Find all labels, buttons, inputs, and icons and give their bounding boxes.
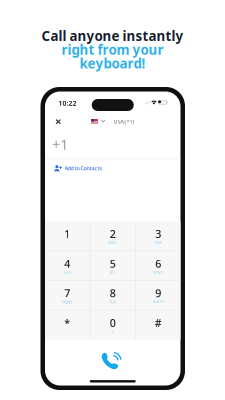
button[interactable]: USA (+1)	[88, 116, 137, 127]
button[interactable]: 8	[90, 281, 135, 310]
staticText: MNO	[153, 270, 163, 275]
staticText: 10:22	[58, 99, 76, 108]
staticText: keyboard!	[79, 54, 145, 72]
staticText: 6	[155, 256, 161, 271]
button[interactable]: 1	[45, 221, 90, 250]
staticText: ABC	[108, 240, 117, 245]
staticText: PQRS	[62, 299, 72, 305]
staticText: USA (+1)	[113, 118, 134, 125]
button[interactable]: 6	[136, 251, 180, 280]
button[interactable]: 5	[90, 251, 135, 280]
staticText: TUV	[109, 299, 117, 305]
button[interactable]: 9	[136, 281, 180, 310]
staticText: WXYZ	[153, 299, 164, 305]
staticText: 9	[155, 286, 161, 300]
staticText: #	[155, 316, 162, 330]
button[interactable]: 2	[90, 221, 135, 250]
button[interactable]: 7	[45, 281, 90, 310]
staticText: GHI	[64, 270, 71, 275]
button[interactable]: 3	[136, 221, 180, 250]
button[interactable]: Call	[45, 339, 180, 372]
staticText: JKL	[110, 270, 116, 275]
button[interactable]: Close	[51, 114, 65, 128]
staticText: 1	[64, 227, 70, 241]
staticText: right from your	[61, 41, 163, 58]
button[interactable]: 0	[90, 310, 135, 339]
staticText: 0	[110, 316, 116, 330]
staticText: 4	[64, 256, 70, 271]
staticText: 5	[110, 256, 116, 271]
button[interactable]: #	[136, 310, 180, 339]
staticText: 2	[110, 227, 116, 241]
button[interactable]: *	[45, 310, 90, 339]
staticText: 7	[64, 286, 70, 300]
staticText: Call anyone instantly	[41, 27, 183, 45]
staticText: *	[64, 316, 70, 330]
button[interactable]: Add to Contacts	[51, 162, 105, 175]
staticText: 3	[155, 227, 161, 241]
staticText: +	[112, 329, 114, 334]
staticText: 8	[110, 286, 116, 300]
button[interactable]: 4	[45, 251, 90, 280]
staticText: +1	[52, 134, 68, 154]
staticText: DEF	[155, 240, 162, 245]
staticText: Add to Contacts	[64, 165, 102, 172]
